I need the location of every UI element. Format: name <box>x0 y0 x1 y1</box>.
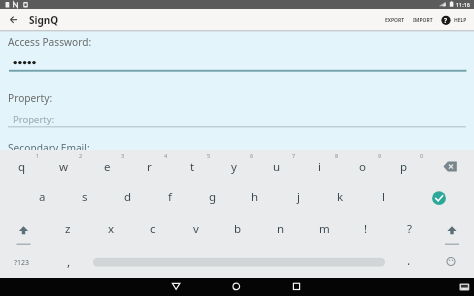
button[interactable] <box>3 216 43 243</box>
button[interactable]: a <box>22 184 62 210</box>
staticText: w <box>59 159 69 175</box>
button[interactable]: ?123 <box>4 254 40 272</box>
staticText: Property: <box>8 91 53 105</box>
button[interactable] <box>93 252 385 274</box>
button[interactable]: o <box>342 154 382 180</box>
button[interactable]: p <box>384 154 424 180</box>
button[interactable]: EXPORT <box>355 10 435 30</box>
staticText: IMPORT <box>413 17 433 24</box>
staticText: ? <box>407 221 412 237</box>
button[interactable]: u <box>257 154 297 180</box>
staticText: v <box>193 221 199 237</box>
button[interactable]: g <box>193 184 233 210</box>
staticText: 3 <box>121 152 125 159</box>
button[interactable]: j <box>278 184 318 210</box>
staticText: Property: <box>13 113 55 126</box>
staticText: e <box>104 159 111 175</box>
staticText: r <box>147 159 152 175</box>
button[interactable]: r <box>129 154 169 180</box>
staticText: 7 <box>292 152 296 159</box>
button[interactable] <box>8 50 466 72</box>
staticText: m <box>319 221 330 237</box>
staticText: 8 <box>335 152 339 159</box>
button[interactable]: HELP <box>440 10 474 30</box>
staticText: . <box>407 252 411 268</box>
button[interactable] <box>419 184 459 211</box>
button[interactable]: y <box>214 154 254 180</box>
button[interactable]: l <box>363 184 403 210</box>
staticText: n <box>277 221 285 237</box>
staticText: 5 <box>207 152 211 159</box>
button[interactable] <box>280 278 312 296</box>
staticText: i <box>318 159 321 175</box>
button[interactable] <box>221 278 253 296</box>
staticText: SignQ <box>29 13 59 27</box>
button[interactable]: , <box>59 252 79 270</box>
button[interactable]: i <box>299 154 339 180</box>
staticText: Secondary Email: <box>8 141 90 155</box>
button[interactable] <box>8 108 466 128</box>
button[interactable]: q <box>2 154 42 180</box>
staticText: x <box>108 221 115 237</box>
staticText: ? <box>444 16 448 25</box>
staticText: Access Password: <box>8 35 92 49</box>
staticText: 1 <box>36 152 40 159</box>
button[interactable]: d <box>108 184 148 210</box>
staticText: 6 <box>250 152 254 159</box>
button[interactable]: e <box>87 154 127 180</box>
staticText: d <box>124 189 132 205</box>
staticText: f <box>168 189 172 205</box>
staticText: j <box>297 189 300 205</box>
staticText: a <box>39 189 46 205</box>
staticText: y <box>231 159 237 175</box>
button[interactable]: t <box>172 154 212 180</box>
button[interactable] <box>432 216 472 243</box>
staticText: s <box>82 189 88 205</box>
staticText: 4 <box>164 152 168 159</box>
staticText: t <box>190 159 195 175</box>
staticText: c <box>150 221 156 237</box>
staticText: k <box>337 189 344 205</box>
staticText: , <box>67 253 71 269</box>
staticText: h <box>251 189 259 205</box>
button[interactable]: f <box>150 184 190 210</box>
button[interactable] <box>160 278 192 296</box>
staticText: 9 <box>378 152 382 159</box>
staticText: 11:16 <box>456 1 470 8</box>
staticText: 2 <box>79 152 83 159</box>
button[interactable]: m <box>304 216 344 242</box>
button[interactable]: z <box>48 216 88 242</box>
staticText: o <box>359 159 366 175</box>
button[interactable]: x <box>91 216 131 242</box>
staticText: b <box>234 221 242 237</box>
button[interactable]: b <box>218 216 258 242</box>
staticText: g <box>209 189 217 205</box>
staticText: ! <box>364 221 368 237</box>
staticText: q <box>18 159 26 175</box>
button[interactable]: . <box>399 251 419 269</box>
button[interactable] <box>430 153 470 180</box>
staticText: p <box>400 159 408 175</box>
button[interactable]: IMPORT <box>383 10 463 30</box>
staticText: 0 <box>420 152 424 159</box>
staticText: HELP <box>454 17 467 24</box>
button[interactable] <box>5 11 22 28</box>
button[interactable]: k <box>320 184 360 210</box>
staticText: EXPORT <box>385 17 405 24</box>
button[interactable]: h <box>235 184 275 210</box>
button[interactable]: s <box>65 184 105 210</box>
button[interactable]: ? <box>389 216 429 242</box>
staticText: u <box>273 159 281 175</box>
button[interactable] <box>436 252 466 274</box>
button[interactable]: w <box>44 154 84 180</box>
button[interactable]: n <box>261 216 301 242</box>
button[interactable]: c <box>133 216 173 242</box>
button[interactable]: ! <box>346 216 386 242</box>
button[interactable]: v <box>176 216 216 242</box>
staticText: z <box>65 221 71 237</box>
staticText: ?123 <box>14 258 30 268</box>
staticText: l <box>382 189 385 205</box>
